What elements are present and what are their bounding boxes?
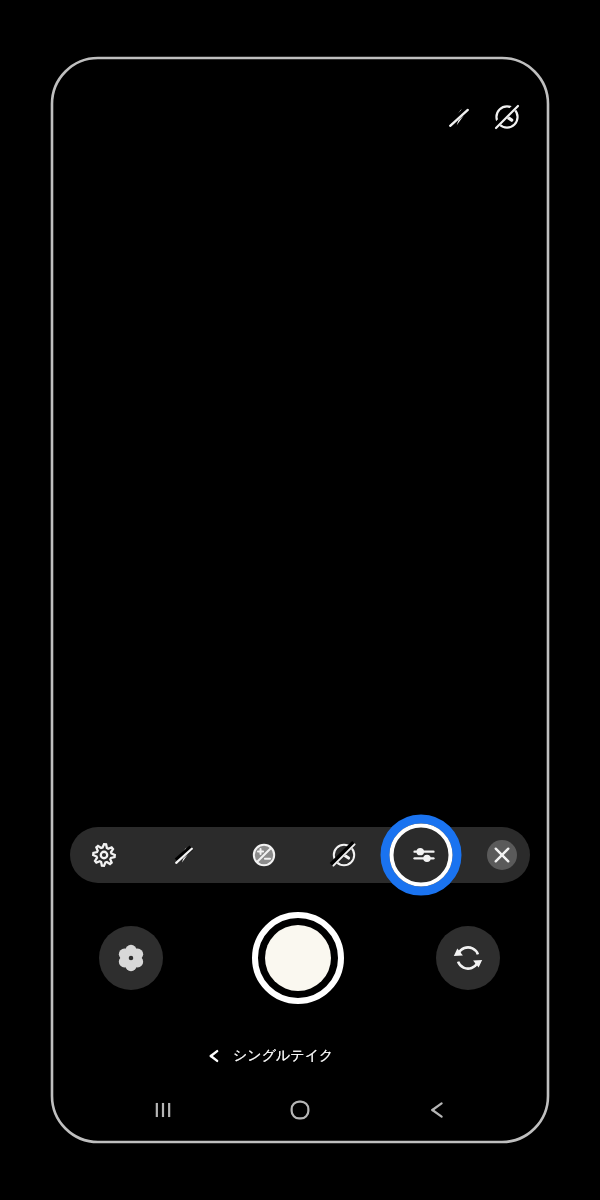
button[interactable]: Home <box>267 1090 333 1130</box>
button[interactable]: Switch camera <box>436 926 500 990</box>
button[interactable]: Shutter <box>252 912 344 1004</box>
button[interactable]: Timer <box>316 827 372 883</box>
button[interactable]: Camera settings <box>76 827 132 883</box>
button[interactable]: Back <box>404 1090 470 1130</box>
button[interactable]: シングルテイク <box>205 1040 395 1072</box>
button[interactable]: Timer off <box>485 95 529 139</box>
button[interactable]: Close <box>474 827 530 883</box>
button[interactable]: Flash off <box>437 95 481 139</box>
button[interactable]: Flash <box>156 827 212 883</box>
button[interactable]: Picture adjustments <box>396 827 452 883</box>
staticText: シングルテイク <box>233 1047 334 1065</box>
button[interactable]: Recents <box>130 1090 196 1130</box>
button[interactable]: Filters <box>99 926 163 990</box>
button[interactable]: Exposure <box>236 827 292 883</box>
